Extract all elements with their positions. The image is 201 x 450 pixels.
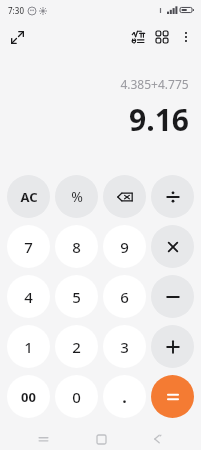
button[interactable]: Multiply: [151, 225, 194, 268]
button[interactable]: 5: [55, 275, 98, 318]
button[interactable]: 3: [103, 325, 146, 368]
button[interactable]: 9: [103, 225, 146, 268]
button[interactable]: 1: [7, 325, 50, 368]
button[interactable]: Divide: [151, 175, 194, 218]
button[interactable]: 0: [55, 375, 98, 418]
button[interactable]: Home: [86, 428, 116, 450]
staticText: AC: [20, 188, 38, 206]
staticText: 6: [120, 287, 129, 307]
button[interactable]: 6: [103, 275, 146, 318]
button[interactable]: %: [55, 175, 98, 218]
staticText: 5: [72, 287, 81, 307]
staticText: 0: [72, 387, 81, 407]
button[interactable]: Unit converter: [150, 25, 174, 49]
staticText: 7: [24, 237, 33, 257]
staticText: 3: [120, 337, 129, 357]
button[interactable]: More options: [174, 25, 198, 49]
staticText: 00: [21, 388, 36, 406]
staticText: 2: [72, 337, 81, 357]
button[interactable]: 7: [7, 225, 50, 268]
button[interactable]: 00: [7, 375, 50, 418]
button[interactable]: Equals: [151, 375, 194, 418]
button[interactable]: Subtract: [151, 275, 194, 318]
button[interactable]: Scientific mode: [126, 25, 150, 49]
button[interactable]: Back: [143, 428, 173, 450]
staticText: %: [71, 187, 83, 206]
staticText: 4.385+4.775: [120, 76, 189, 92]
button[interactable]: .: [103, 375, 146, 418]
staticText: 9.16: [129, 99, 189, 140]
button[interactable]: AC: [7, 175, 50, 218]
staticText: 1: [24, 337, 33, 357]
button[interactable]: Backspace: [103, 175, 146, 218]
button[interactable]: 8: [55, 225, 98, 268]
button[interactable]: Add: [151, 325, 194, 368]
staticText: 7:30: [8, 5, 24, 16]
staticText: 9: [120, 237, 129, 257]
staticText: 8: [72, 237, 81, 257]
button[interactable]: Collapse: [5, 25, 29, 49]
button[interactable]: 4: [7, 275, 50, 318]
button[interactable]: 2: [55, 325, 98, 368]
staticText: 4: [24, 287, 33, 307]
staticText: .: [122, 386, 127, 408]
button[interactable]: Recents: [28, 428, 58, 450]
